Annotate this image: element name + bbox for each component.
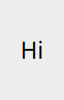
- staticText: Hi: [20, 35, 43, 65]
